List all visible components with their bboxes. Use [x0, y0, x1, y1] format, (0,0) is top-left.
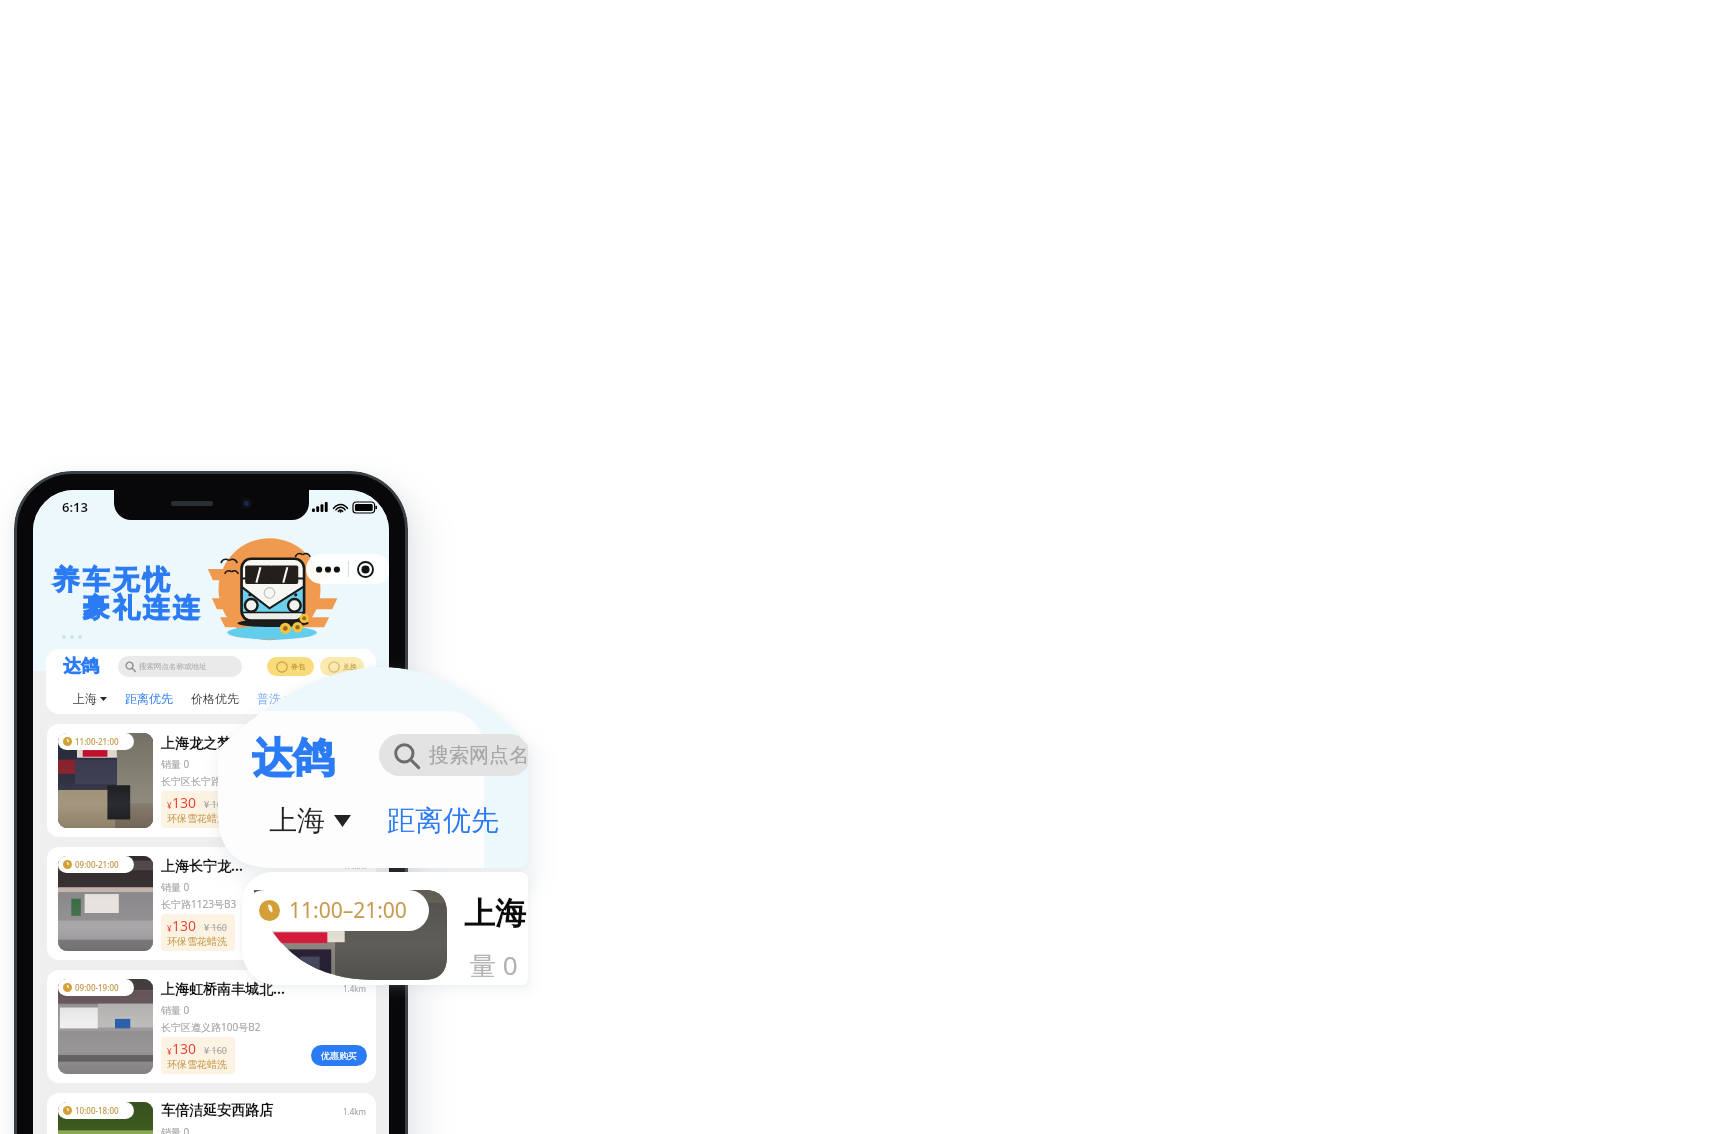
- button[interactable]: Search stores by name or address: [118, 656, 242, 677]
- button[interactable]: 优惠购买: [311, 799, 367, 820]
- staticText: 优惠购买: [321, 927, 357, 938]
- staticText: 上海虹桥南丰城北…: [161, 979, 343, 998]
- staticText: 长宁区长宁路…: [161, 774, 229, 788]
- button[interactable]: 10:00-18:00: [47, 1093, 376, 1134]
- staticText: 优惠购买: [321, 804, 357, 815]
- staticText: 1.4km: [343, 983, 367, 994]
- staticText: 达鸽: [252, 733, 334, 785]
- staticText: ¥: [167, 923, 172, 934]
- staticText: 上海长宁龙…: [161, 856, 343, 875]
- button[interactable]: 距离优先: [125, 683, 173, 714]
- staticText: 券包: [291, 662, 305, 671]
- button[interactable]: 上海: [73, 683, 107, 714]
- staticText: 优惠购买: [321, 1050, 357, 1061]
- staticText: 130: [172, 793, 197, 812]
- staticText: 上海: [269, 803, 325, 838]
- staticText: 环保雪花蜡洗: [167, 935, 227, 948]
- staticText: ¥: [167, 1046, 172, 1057]
- staticText: 销量 0: [161, 1003, 190, 1017]
- staticText: 价格优先: [191, 691, 239, 706]
- staticText: ¥ 160: [204, 798, 227, 810]
- staticText: 130: [172, 916, 197, 935]
- staticText: 09:00-21:00: [75, 859, 119, 870]
- staticText: 环保雪花蜡洗: [167, 1058, 227, 1071]
- staticText: 上海: [464, 894, 526, 933]
- staticText: 1.4km: [343, 1106, 367, 1117]
- staticText: 搜索网点名称或地址: [139, 662, 207, 671]
- button[interactable]: 优惠购买: [311, 922, 367, 943]
- staticText: 11:00-21:00: [75, 736, 119, 747]
- staticText: 销量 0: [161, 757, 190, 771]
- staticText: 距离优先: [387, 803, 499, 838]
- staticText: 普洗: [257, 691, 281, 706]
- staticText: 销量 0: [161, 1125, 190, 1134]
- staticText: ¥: [167, 800, 172, 811]
- staticText: ¥ 160: [204, 1044, 227, 1056]
- staticText: 搜索网点名: [429, 743, 528, 768]
- staticText: 09:00-19:00: [75, 982, 119, 993]
- staticText: 达鸽: [63, 655, 99, 678]
- staticText: 10:00-18:00: [75, 1105, 119, 1116]
- button[interactable]: 11:00-21:00: [47, 724, 376, 837]
- button[interactable]: More options and scan: [306, 554, 389, 584]
- staticText: 豪礼连连: [81, 591, 201, 625]
- staticText: 距离优先: [125, 691, 173, 706]
- staticText: 6:13: [62, 498, 88, 516]
- staticText: 销量 0: [161, 880, 190, 894]
- button[interactable]: 券包: [267, 657, 314, 676]
- button[interactable]: 价格优先: [191, 683, 239, 714]
- staticText: 量 0: [470, 947, 518, 983]
- staticText: 长宁路1123号B3: [161, 897, 237, 911]
- button[interactable]: 兑换: [320, 657, 364, 676]
- button[interactable]: 09:00-21:00: [47, 847, 376, 960]
- staticText: 上海龙之梦…: [161, 733, 343, 752]
- staticText: 车倍洁延安西路店: [161, 1102, 343, 1120]
- staticText: 养车无忧: [51, 563, 171, 597]
- staticText: 长宁区遵义路100号B2: [161, 1020, 261, 1034]
- staticText: ¥ 160: [204, 921, 227, 933]
- staticText: 130: [172, 1039, 197, 1058]
- staticText: 兑换: [343, 662, 357, 671]
- button[interactable]: 普洗: [257, 683, 281, 714]
- staticText: 1.4km: [343, 860, 367, 871]
- staticText: 11:00–21:00: [289, 896, 407, 925]
- button[interactable]: 09:00-19:00: [47, 970, 376, 1083]
- button[interactable]: 优惠购买: [311, 1045, 367, 1066]
- staticText: 环保雪花蜡洗: [167, 812, 227, 825]
- staticText: 上海: [73, 691, 97, 706]
